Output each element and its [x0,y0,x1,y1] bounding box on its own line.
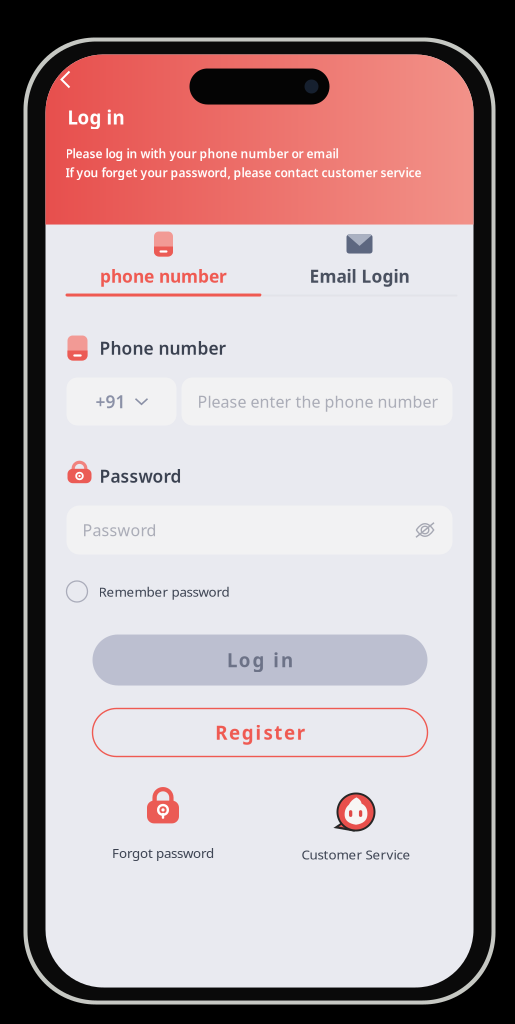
button[interactable]: Forgot password [66,793,259,862]
button[interactable]: Back [45,54,105,94]
button[interactable]: Phone number [181,377,452,425]
staticText: Register [215,720,305,745]
staticText: phone number [100,264,227,287]
button[interactable]: Remember password [66,580,452,602]
staticText: Forgot password [112,844,214,862]
staticText: Remember password [98,583,229,600]
button[interactable]: Customer Service [259,791,452,863]
staticText: +91 [95,390,125,413]
staticText: If you forget your password, please cont… [65,165,421,180]
staticText: Please enter the phone number [197,391,438,412]
staticText: Customer Service [301,845,410,863]
button[interactable]: Password [66,505,452,554]
button[interactable]: Log in [92,634,427,685]
button[interactable]: Register [92,708,427,756]
staticText: Phone number [99,336,226,359]
button[interactable]: phone number [65,224,261,296]
staticText: Email Login [309,264,409,287]
staticText: Please log in with your phone number or … [65,146,338,161]
button[interactable]: Country code +91 [66,377,176,425]
staticText: Password [99,464,181,487]
staticText: Password [82,519,156,541]
staticText: Log in [67,105,124,130]
staticText: Log in [227,648,293,672]
button[interactable]: Email Login [261,224,457,296]
